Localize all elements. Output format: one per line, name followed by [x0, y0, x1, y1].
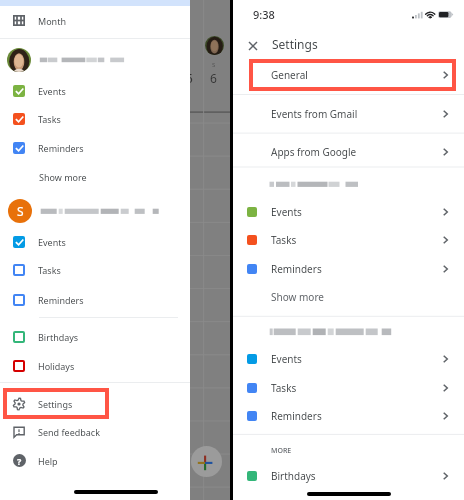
- button[interactable]: Events from Gmail: [233, 97, 464, 130]
- staticText: Show more: [39, 171, 87, 183]
- button[interactable]: Events: [0, 79, 190, 103]
- staticText: Reminders: [271, 262, 322, 276]
- button[interactable]: Reminders: [0, 288, 190, 312]
- staticText: Tasks: [271, 381, 297, 395]
- staticText: Tasks: [271, 233, 297, 247]
- button[interactable]: Reminders: [233, 402, 464, 430]
- staticText: 5: [186, 70, 193, 86]
- staticText: Settings: [272, 36, 318, 52]
- staticText: Holidays: [38, 360, 75, 372]
- button[interactable]: Settings: [0, 390, 190, 417]
- staticText: S: [212, 61, 216, 69]
- staticText: Month: [38, 15, 66, 27]
- button[interactable]: Birthdays: [0, 325, 190, 349]
- button[interactable]: Apps from Google: [233, 135, 464, 168]
- button[interactable]: Reminders: [233, 255, 464, 283]
- staticText: Birthdays: [38, 331, 79, 343]
- button[interactable]: Tasks: [233, 374, 464, 402]
- staticText: Birthdays: [271, 469, 316, 483]
- staticText: 6: [210, 70, 217, 86]
- staticText: Events: [271, 205, 302, 219]
- button[interactable]: Account: [7, 48, 31, 72]
- staticText: Events: [38, 85, 66, 97]
- button[interactable]: Reminders: [0, 136, 190, 160]
- button[interactable]: Events: [233, 198, 464, 226]
- staticText: General: [271, 68, 308, 82]
- staticText: Tasks: [38, 113, 61, 125]
- button[interactable]: Show more: [0, 165, 190, 188]
- staticText: Help: [38, 455, 58, 467]
- staticText: MORE: [271, 446, 292, 456]
- staticText: Apps from Google: [271, 145, 357, 159]
- button[interactable]: Birthdays: [233, 462, 464, 490]
- staticText: Events: [271, 352, 302, 366]
- staticText: Events: [38, 236, 66, 248]
- button[interactable]: Send feedback: [0, 418, 190, 445]
- button[interactable]: General: [233, 59, 464, 91]
- staticText: ?: [17, 455, 22, 467]
- button[interactable]: Close: [239, 32, 267, 60]
- button[interactable]: Tasks: [0, 258, 190, 282]
- button[interactable]: ?: [0, 447, 190, 474]
- staticText: Events from Gmail: [271, 107, 358, 121]
- button[interactable]: Tasks: [233, 226, 464, 254]
- staticText: S: [17, 203, 24, 219]
- staticText: 9:38: [253, 7, 275, 22]
- staticText: Reminders: [271, 409, 322, 423]
- button[interactable]: Events: [233, 345, 464, 373]
- button[interactable]: Events: [0, 230, 190, 254]
- button[interactable]: Month: [0, 5, 190, 36]
- button[interactable]: Show more: [233, 284, 464, 310]
- staticText: Settings: [38, 398, 73, 410]
- staticText: Send feedback: [38, 426, 100, 438]
- button[interactable]: Create event: [191, 446, 222, 477]
- button[interactable]: Holidays: [0, 354, 190, 378]
- staticText: Tasks: [38, 264, 61, 276]
- button[interactable]: Tasks: [0, 107, 190, 131]
- staticText: Show more: [271, 290, 324, 304]
- staticText: F: [187, 61, 191, 69]
- staticText: Reminders: [38, 142, 84, 154]
- staticText: Reminders: [38, 294, 84, 306]
